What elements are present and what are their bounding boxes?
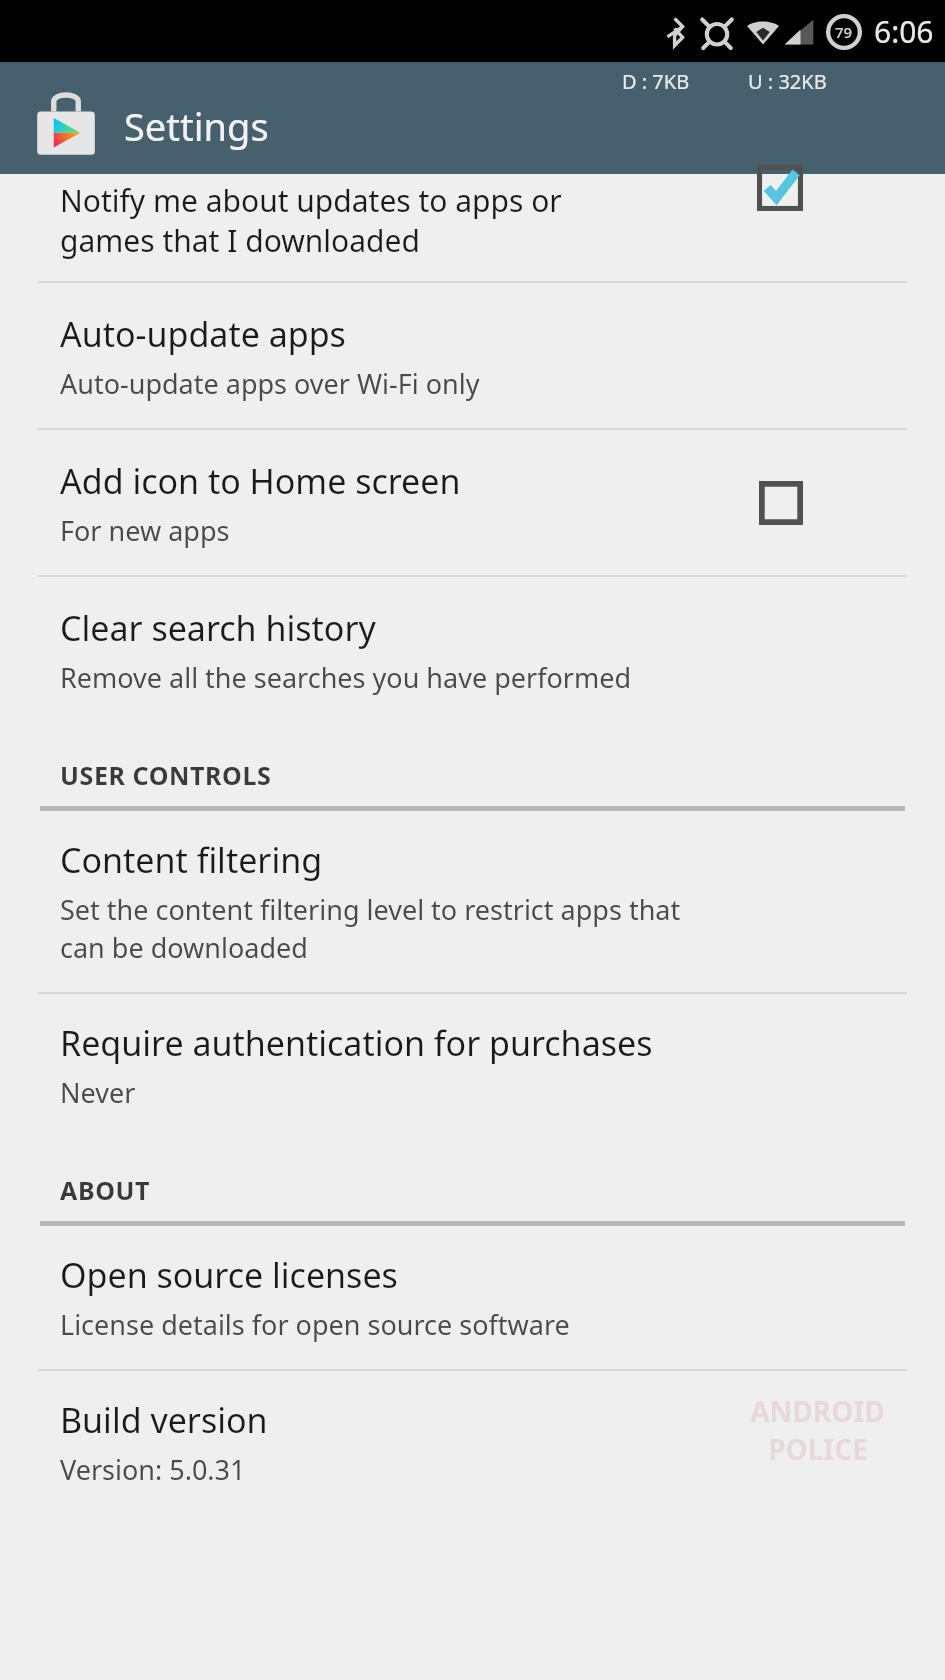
button[interactable]: Clear search history	[0, 577, 945, 722]
staticText: Set the content filtering level to restr…	[60, 891, 681, 966]
button[interactable]: Content filtering	[0, 811, 945, 992]
staticText: For new apps	[60, 512, 230, 549]
staticText: ANDROID	[750, 1392, 885, 1430]
staticText: Clear search history	[60, 605, 376, 651]
staticText: USER CONTROLS	[60, 758, 272, 792]
staticText: Auto-update apps over Wi-Fi only	[60, 365, 480, 402]
staticText: U : 32KB	[748, 68, 827, 95]
staticText: POLICE	[768, 1430, 868, 1468]
staticText: Build version	[60, 1397, 268, 1443]
staticText: D : 7KB	[622, 68, 690, 95]
staticText: ABOUT	[60, 1173, 151, 1207]
staticText: Never	[60, 1074, 136, 1111]
staticText: Auto-update apps	[60, 311, 346, 357]
staticText: 79	[835, 22, 853, 42]
staticText: 6:06	[874, 11, 934, 52]
staticText: Settings	[124, 100, 269, 152]
button[interactable]: Auto-update apps	[0, 283, 945, 428]
button[interactable]: Open source licenses	[0, 1226, 945, 1369]
staticText: Remove all the searches you have perform…	[60, 659, 631, 696]
staticText: Notify me about updates to apps or games…	[60, 180, 562, 261]
button[interactable]: Build version	[0, 1371, 945, 1488]
staticText: Add icon to Home screen	[60, 458, 461, 504]
staticText: License details for open source software	[60, 1306, 570, 1343]
staticText: Version: 5.0.31	[60, 1451, 246, 1488]
button[interactable]: Add icon to Home screen	[0, 430, 945, 575]
staticText: Require authentication for purchases	[60, 1020, 653, 1066]
staticText: Content filtering	[60, 837, 323, 883]
staticText: Open source licenses	[60, 1252, 398, 1298]
button[interactable]: Notify me about updates to apps or games…	[0, 174, 945, 281]
button[interactable]: Require authentication for purchases	[0, 994, 945, 1137]
